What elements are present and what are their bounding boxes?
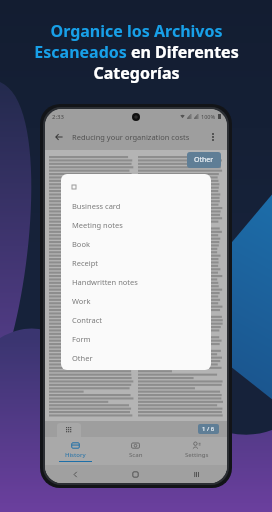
button[interactable]: Settings	[166, 437, 227, 465]
staticText: Other	[72, 353, 93, 363]
staticText: Receipt	[72, 258, 98, 268]
staticText: Contract	[72, 315, 103, 325]
button[interactable]: Handwritten notes	[61, 272, 211, 291]
staticText: Business card	[72, 201, 121, 211]
button[interactable]: Business card	[61, 196, 211, 215]
button[interactable]: Form	[61, 329, 211, 348]
staticText: 2:33	[52, 113, 64, 121]
staticText: Other	[194, 155, 214, 165]
button[interactable]: recents	[166, 465, 227, 483]
button[interactable]: Work	[61, 291, 211, 310]
staticText: Book	[72, 239, 90, 249]
button[interactable]: History	[45, 437, 105, 465]
button[interactable]: Book	[61, 234, 211, 253]
staticText: 100%	[201, 113, 216, 120]
button[interactable]: home	[105, 465, 166, 483]
button[interactable]: back	[45, 465, 105, 483]
button[interactable]	[61, 177, 211, 196]
staticText: Work	[72, 296, 91, 306]
button[interactable]: Other	[61, 348, 211, 367]
button[interactable]: More options	[206, 130, 220, 144]
button[interactable]: Scan	[105, 437, 166, 465]
staticText: History	[65, 451, 86, 459]
button[interactable]: Receipt	[61, 253, 211, 272]
staticText: Handwritten notes	[72, 277, 138, 287]
button[interactable]: Other	[187, 152, 221, 168]
staticText: Organice los Archivos Escaneados en Dife…	[34, 20, 239, 84]
staticText: Settings	[185, 451, 209, 459]
staticText: Scan	[129, 451, 143, 459]
button[interactable]: Back	[52, 130, 66, 144]
staticText: Reducing your organization costs	[72, 132, 190, 142]
staticText: Form	[72, 334, 91, 344]
staticText: 1 / 6	[202, 425, 215, 433]
staticText: Meeting notes	[72, 220, 123, 230]
button[interactable]: Grid view	[57, 423, 81, 437]
button[interactable]: Meeting notes	[61, 215, 211, 234]
button[interactable]: Contract	[61, 310, 211, 329]
